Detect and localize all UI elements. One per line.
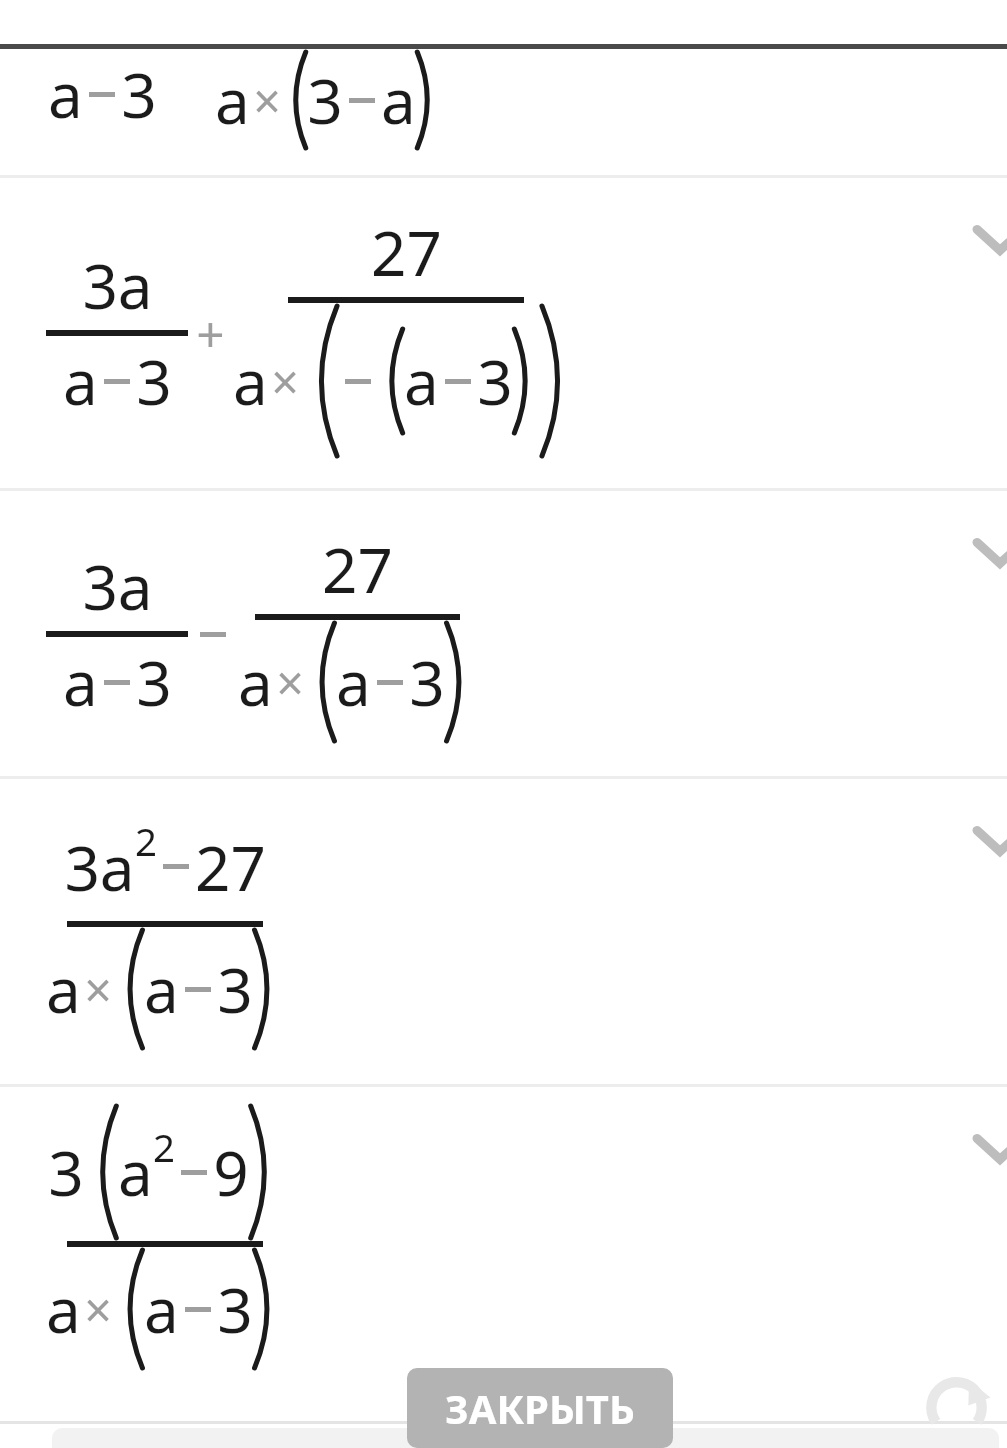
staticText: a (46, 1267, 81, 1351)
staticText: a (46, 947, 81, 1031)
staticText: 3 (307, 58, 343, 142)
button[interactable]: 3a (0, 491, 1007, 776)
staticText: ЗАКРЫТЬ (445, 1381, 635, 1435)
staticText: 2 (135, 815, 157, 867)
staticText: 3 (121, 52, 157, 136)
staticText: 3a (82, 544, 153, 628)
staticText: a (118, 1130, 153, 1214)
staticText: 3 (477, 339, 513, 423)
staticText: 3 (48, 1130, 84, 1214)
staticText: 27 (371, 210, 442, 294)
staticText: + (196, 299, 225, 367)
button[interactable]: a (0, 0, 1007, 175)
staticText: a (63, 640, 98, 724)
button[interactable]: Expand step (965, 204, 1007, 274)
staticText: × (253, 67, 281, 133)
staticText: × (271, 348, 299, 414)
staticText: × (84, 956, 112, 1022)
staticText: × (276, 649, 304, 715)
staticText: 3a (82, 243, 153, 327)
button[interactable]: Redo (915, 1360, 1001, 1446)
staticText: 3 (409, 640, 445, 724)
staticText: a (215, 58, 250, 142)
staticText: a (238, 640, 273, 724)
staticText: 27 (322, 527, 393, 611)
button[interactable]: 3a (0, 178, 1007, 488)
staticText: × (84, 1276, 112, 1342)
button[interactable]: Expand step (965, 517, 1007, 587)
staticText: a (63, 339, 98, 423)
button[interactable]: Expand step (965, 805, 1007, 875)
staticText: a (404, 339, 439, 423)
button[interactable]: 3a (0, 779, 1007, 1084)
staticText: a (233, 339, 268, 423)
staticText: 3 (136, 640, 172, 724)
staticText: a (48, 52, 83, 136)
staticText: 3 (217, 947, 253, 1031)
button[interactable]: Expand step (965, 1113, 1007, 1183)
staticText: 27 (195, 825, 266, 909)
button[interactable]: 3 (0, 1087, 1007, 1387)
button[interactable]: ЗАКРЫТЬ (407, 1368, 673, 1448)
staticText: a (144, 947, 179, 1031)
staticText: 3a (64, 825, 135, 909)
staticText: 9 (213, 1130, 249, 1214)
staticText: 3 (136, 339, 172, 423)
staticText: a (144, 1267, 179, 1351)
staticText: a (336, 640, 371, 724)
staticText: a (381, 58, 416, 142)
staticText: 3 (217, 1267, 253, 1351)
staticText: 2 (153, 1121, 175, 1173)
